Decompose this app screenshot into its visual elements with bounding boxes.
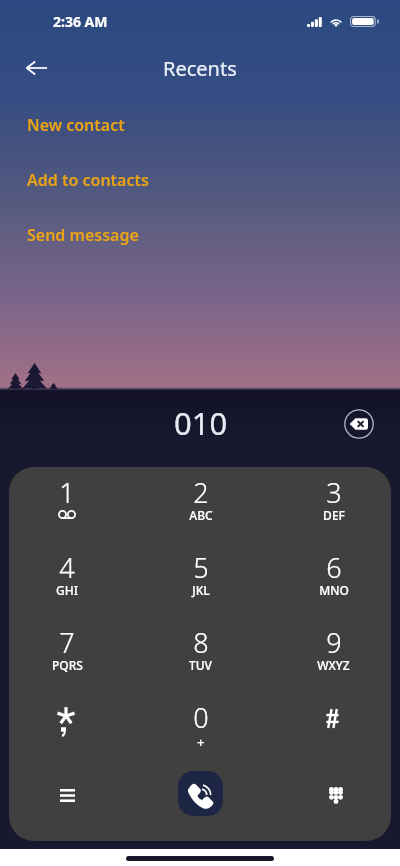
staticText: Add to contacts (27, 169, 149, 191)
staticText: Recents (163, 55, 237, 82)
button[interactable]: 0 (134, 692, 267, 767)
staticText: Send message (27, 224, 139, 246)
staticText: 6 (326, 549, 342, 586)
staticText: TUV (189, 657, 212, 673)
staticText: 2:36 AM (53, 12, 108, 31)
staticText: 010 (174, 402, 228, 444)
button[interactable] (0, 692, 134, 767)
button[interactable] (267, 692, 400, 767)
staticText: 9 (326, 624, 342, 661)
button[interactable]: 9 (267, 617, 400, 692)
button[interactable]: New contact (0, 97, 400, 152)
button[interactable]: 5 (134, 542, 267, 617)
staticText: JKL (192, 582, 210, 598)
staticText: MNO (319, 582, 349, 598)
button[interactable]: 3 (267, 467, 400, 542)
staticText: WXYZ (317, 657, 350, 673)
staticText: DEF (323, 507, 345, 523)
staticText: ABC (189, 507, 213, 523)
staticText: 0 (193, 699, 209, 736)
staticText: 4 (59, 549, 75, 586)
button[interactable]: Backspace (339, 404, 379, 444)
staticText: PQRS (52, 657, 83, 673)
button[interactable]: Call history (0, 767, 134, 841)
button[interactable]: Call (178, 771, 223, 816)
button[interactable]: 2 (134, 467, 267, 542)
staticText: 2 (193, 474, 209, 511)
staticText: New contact (27, 114, 125, 136)
staticText: + (197, 733, 205, 751)
button[interactable]: 8 (134, 617, 267, 692)
button[interactable]: Send message (0, 207, 400, 262)
button[interactable]: 6 (267, 542, 400, 617)
staticText: 8 (193, 624, 209, 661)
staticText: 1 (59, 474, 75, 511)
button[interactable]: Dialpad (267, 767, 400, 841)
button[interactable]: 1 (0, 467, 134, 542)
button[interactable]: 4 (0, 542, 134, 617)
button[interactable]: Back (16, 48, 56, 88)
staticText: GHI (56, 582, 78, 598)
staticText: 3 (326, 474, 342, 511)
button[interactable]: 7 (0, 617, 134, 692)
button[interactable]: Add to contacts (0, 152, 400, 207)
staticText: 7 (59, 624, 75, 661)
staticText: 5 (193, 549, 209, 586)
